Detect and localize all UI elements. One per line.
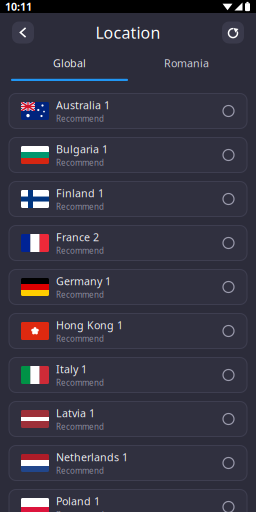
staticText: Poland 1 — [56, 494, 100, 508]
button[interactable]: France 2 — [9, 225, 247, 260]
staticText: Australia 1 — [56, 98, 110, 112]
staticText: Recommend — [56, 421, 104, 432]
button[interactable]: Hong Kong 1 — [9, 313, 247, 348]
staticText: Recommend — [56, 377, 104, 388]
button[interactable]: Bulgaria 1 — [9, 137, 247, 172]
staticText: Italy 1 — [56, 362, 87, 376]
staticText: Germany 1 — [56, 274, 111, 288]
button[interactable]: Back — [12, 21, 34, 43]
staticText: Location — [95, 22, 160, 43]
staticText: Bulgaria 1 — [56, 142, 108, 156]
staticText: Recommend — [56, 289, 104, 300]
staticText: Global — [53, 56, 86, 70]
button[interactable]: Italy 1 — [9, 357, 247, 392]
button[interactable]: Poland 1 — [9, 489, 247, 512]
staticText: Recommend — [56, 245, 104, 256]
button[interactable]: Global — [11, 52, 128, 82]
staticText: 10:11 — [5, 0, 32, 14]
button[interactable]: Germany 1 — [9, 269, 247, 304]
button[interactable]: Romania — [128, 52, 245, 82]
staticText: Recommend — [56, 201, 104, 212]
button[interactable]: Refresh — [222, 21, 244, 43]
staticText: Romania — [164, 56, 209, 70]
button[interactable]: Netherlands 1 — [9, 445, 247, 480]
button[interactable]: Australia 1 — [9, 93, 247, 128]
staticText: Recommend — [56, 465, 104, 476]
button[interactable]: Latvia 1 — [9, 401, 247, 436]
staticText: Recommend — [56, 157, 104, 168]
staticText: Recommend — [56, 333, 104, 344]
staticText: Recommend — [56, 509, 104, 512]
staticText: Finland 1 — [56, 186, 104, 200]
staticText: Netherlands 1 — [56, 450, 128, 464]
staticText: Hong Kong 1 — [56, 318, 123, 332]
button[interactable]: Finland 1 — [9, 181, 247, 216]
staticText: Recommend — [56, 113, 104, 124]
staticText: France 2 — [56, 230, 99, 244]
staticText: Latvia 1 — [56, 406, 95, 420]
